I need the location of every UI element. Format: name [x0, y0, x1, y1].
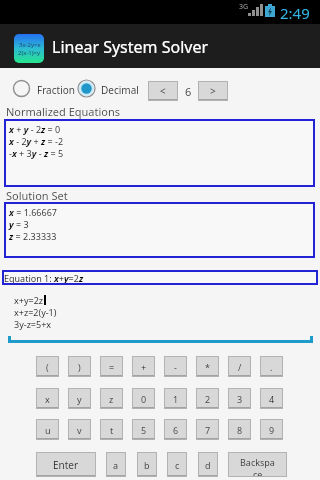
button[interactable]: 0: [132, 388, 155, 409]
button[interactable]: z: [100, 388, 123, 409]
staticText: 5: [141, 424, 147, 436]
staticText: -: [174, 361, 177, 373]
staticText: u: [45, 424, 51, 436]
staticText: z: [109, 393, 114, 405]
button[interactable]: t: [100, 419, 123, 440]
staticText: 1: [173, 393, 179, 405]
staticText: 6: [185, 84, 192, 99]
staticText: 8: [237, 424, 243, 436]
staticText: Backspa: [240, 456, 275, 468]
button[interactable]: =: [100, 356, 123, 377]
staticText: =: [109, 361, 115, 373]
staticText: /: [238, 361, 242, 373]
staticText: >: [210, 84, 216, 98]
staticText: Fraction: [37, 83, 75, 97]
staticText: b: [144, 459, 150, 471]
staticText: 3y-z=5+x: [14, 318, 52, 330]
staticText: x: [45, 393, 50, 405]
button[interactable]: 9: [260, 419, 283, 440]
button[interactable]: 7: [196, 419, 219, 440]
button[interactable]: a: [106, 452, 126, 477]
staticText: Equation 1: x+y=2z: [4, 272, 84, 284]
staticText: x + y - 2z = 0: [9, 123, 61, 135]
button[interactable]: Equation 1: x+y=2z: [2, 270, 318, 285]
staticText: 6: [173, 424, 179, 436]
staticText: 4: [269, 393, 275, 405]
button[interactable]: 8: [228, 419, 251, 440]
staticText: d: [205, 459, 211, 471]
staticText: Normalized Equations: [6, 104, 121, 119]
staticText: ): [78, 361, 81, 373]
button[interactable]: d: [198, 452, 218, 477]
button[interactable]: *: [196, 356, 219, 377]
staticText: *: [205, 361, 210, 373]
button[interactable]: >: [198, 81, 228, 101]
staticText: Decimal: [101, 83, 139, 97]
button[interactable]: Enter: [36, 452, 96, 477]
button[interactable]: b: [137, 452, 157, 477]
staticText: 9: [269, 424, 275, 436]
button[interactable]: [78, 80, 95, 97]
button[interactable]: v: [68, 419, 91, 440]
button[interactable]: 1: [164, 388, 187, 409]
button[interactable]: 6: [164, 419, 187, 440]
button[interactable]: x: [36, 388, 59, 409]
staticText: 3G: [239, 2, 249, 12]
button[interactable]: 4: [260, 388, 283, 409]
staticText: 2(x-1)=y: [18, 49, 41, 57]
button[interactable]: /: [228, 356, 251, 377]
staticText: x - 2y + z = -2: [9, 135, 64, 147]
staticText: y: [77, 393, 82, 405]
button[interactable]: (: [36, 356, 59, 377]
staticText: 0: [141, 393, 147, 405]
staticText: y = 3: [9, 218, 29, 230]
button[interactable]: 3: [228, 388, 251, 409]
staticText: ce: [253, 468, 263, 477]
staticText: +: [141, 361, 147, 373]
button[interactable]: [13, 80, 30, 97]
button[interactable]: u: [36, 419, 59, 440]
button[interactable]: +: [132, 356, 155, 377]
staticText: Solution Set: [6, 188, 68, 203]
button[interactable]: Backspa: [228, 452, 287, 477]
staticText: 3: [237, 393, 243, 405]
staticText: (: [46, 361, 49, 373]
staticText: t: [110, 424, 114, 436]
staticText: <: [160, 84, 166, 98]
button[interactable]: 2: [196, 388, 219, 409]
staticText: .: [270, 361, 273, 373]
staticText: z = 2.33333: [9, 230, 57, 242]
staticText: -x + 3y - z = 5: [9, 147, 64, 159]
staticText: 2:49: [280, 3, 310, 23]
button[interactable]: [8, 336, 313, 343]
button[interactable]: 5: [132, 419, 155, 440]
button[interactable]: <: [148, 81, 178, 101]
staticText: c: [175, 459, 180, 471]
button[interactable]: -: [164, 356, 187, 377]
staticText: a: [113, 459, 119, 471]
staticText: 7: [205, 424, 211, 436]
staticText: 3x-2y=x: [19, 41, 41, 49]
button[interactable]: x+y=2z: [8, 292, 313, 336]
staticText: Enter: [53, 458, 79, 472]
staticText: x = 1.66667: [9, 206, 57, 218]
button[interactable]: .: [260, 356, 283, 377]
staticText: x+y=2z: [14, 294, 44, 306]
staticText: x+z=2(y-1): [14, 306, 57, 318]
staticText: Linear System Solver: [52, 36, 209, 58]
button[interactable]: c: [167, 452, 187, 477]
staticText: v: [77, 424, 82, 436]
button[interactable]: y: [68, 388, 91, 409]
staticText: 2: [205, 393, 211, 405]
button[interactable]: ): [68, 356, 91, 377]
